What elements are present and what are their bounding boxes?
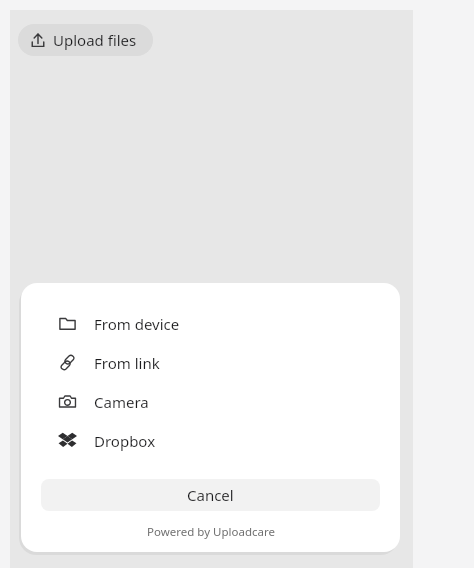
staticText: Upload files	[53, 30, 137, 50]
staticText: Dropbox	[94, 431, 156, 451]
button[interactable]: From device	[21, 304, 400, 343]
staticText: From device	[94, 314, 180, 334]
staticText: Cancel	[187, 485, 234, 505]
staticText: From link	[94, 353, 160, 373]
button[interactable]: Cancel	[41, 479, 380, 511]
button[interactable]: Dropbox	[21, 421, 400, 460]
button[interactable]: Camera	[21, 382, 400, 421]
staticText: Powered by Uploadcare	[147, 524, 275, 540]
button[interactable]: From link	[21, 343, 400, 382]
button[interactable]: Upload files	[18, 24, 153, 56]
other: From link	[58, 353, 77, 372]
staticText: Camera	[94, 392, 149, 412]
other: Dropbox	[58, 431, 77, 450]
other: From device	[58, 314, 77, 333]
other: Camera	[58, 392, 77, 411]
